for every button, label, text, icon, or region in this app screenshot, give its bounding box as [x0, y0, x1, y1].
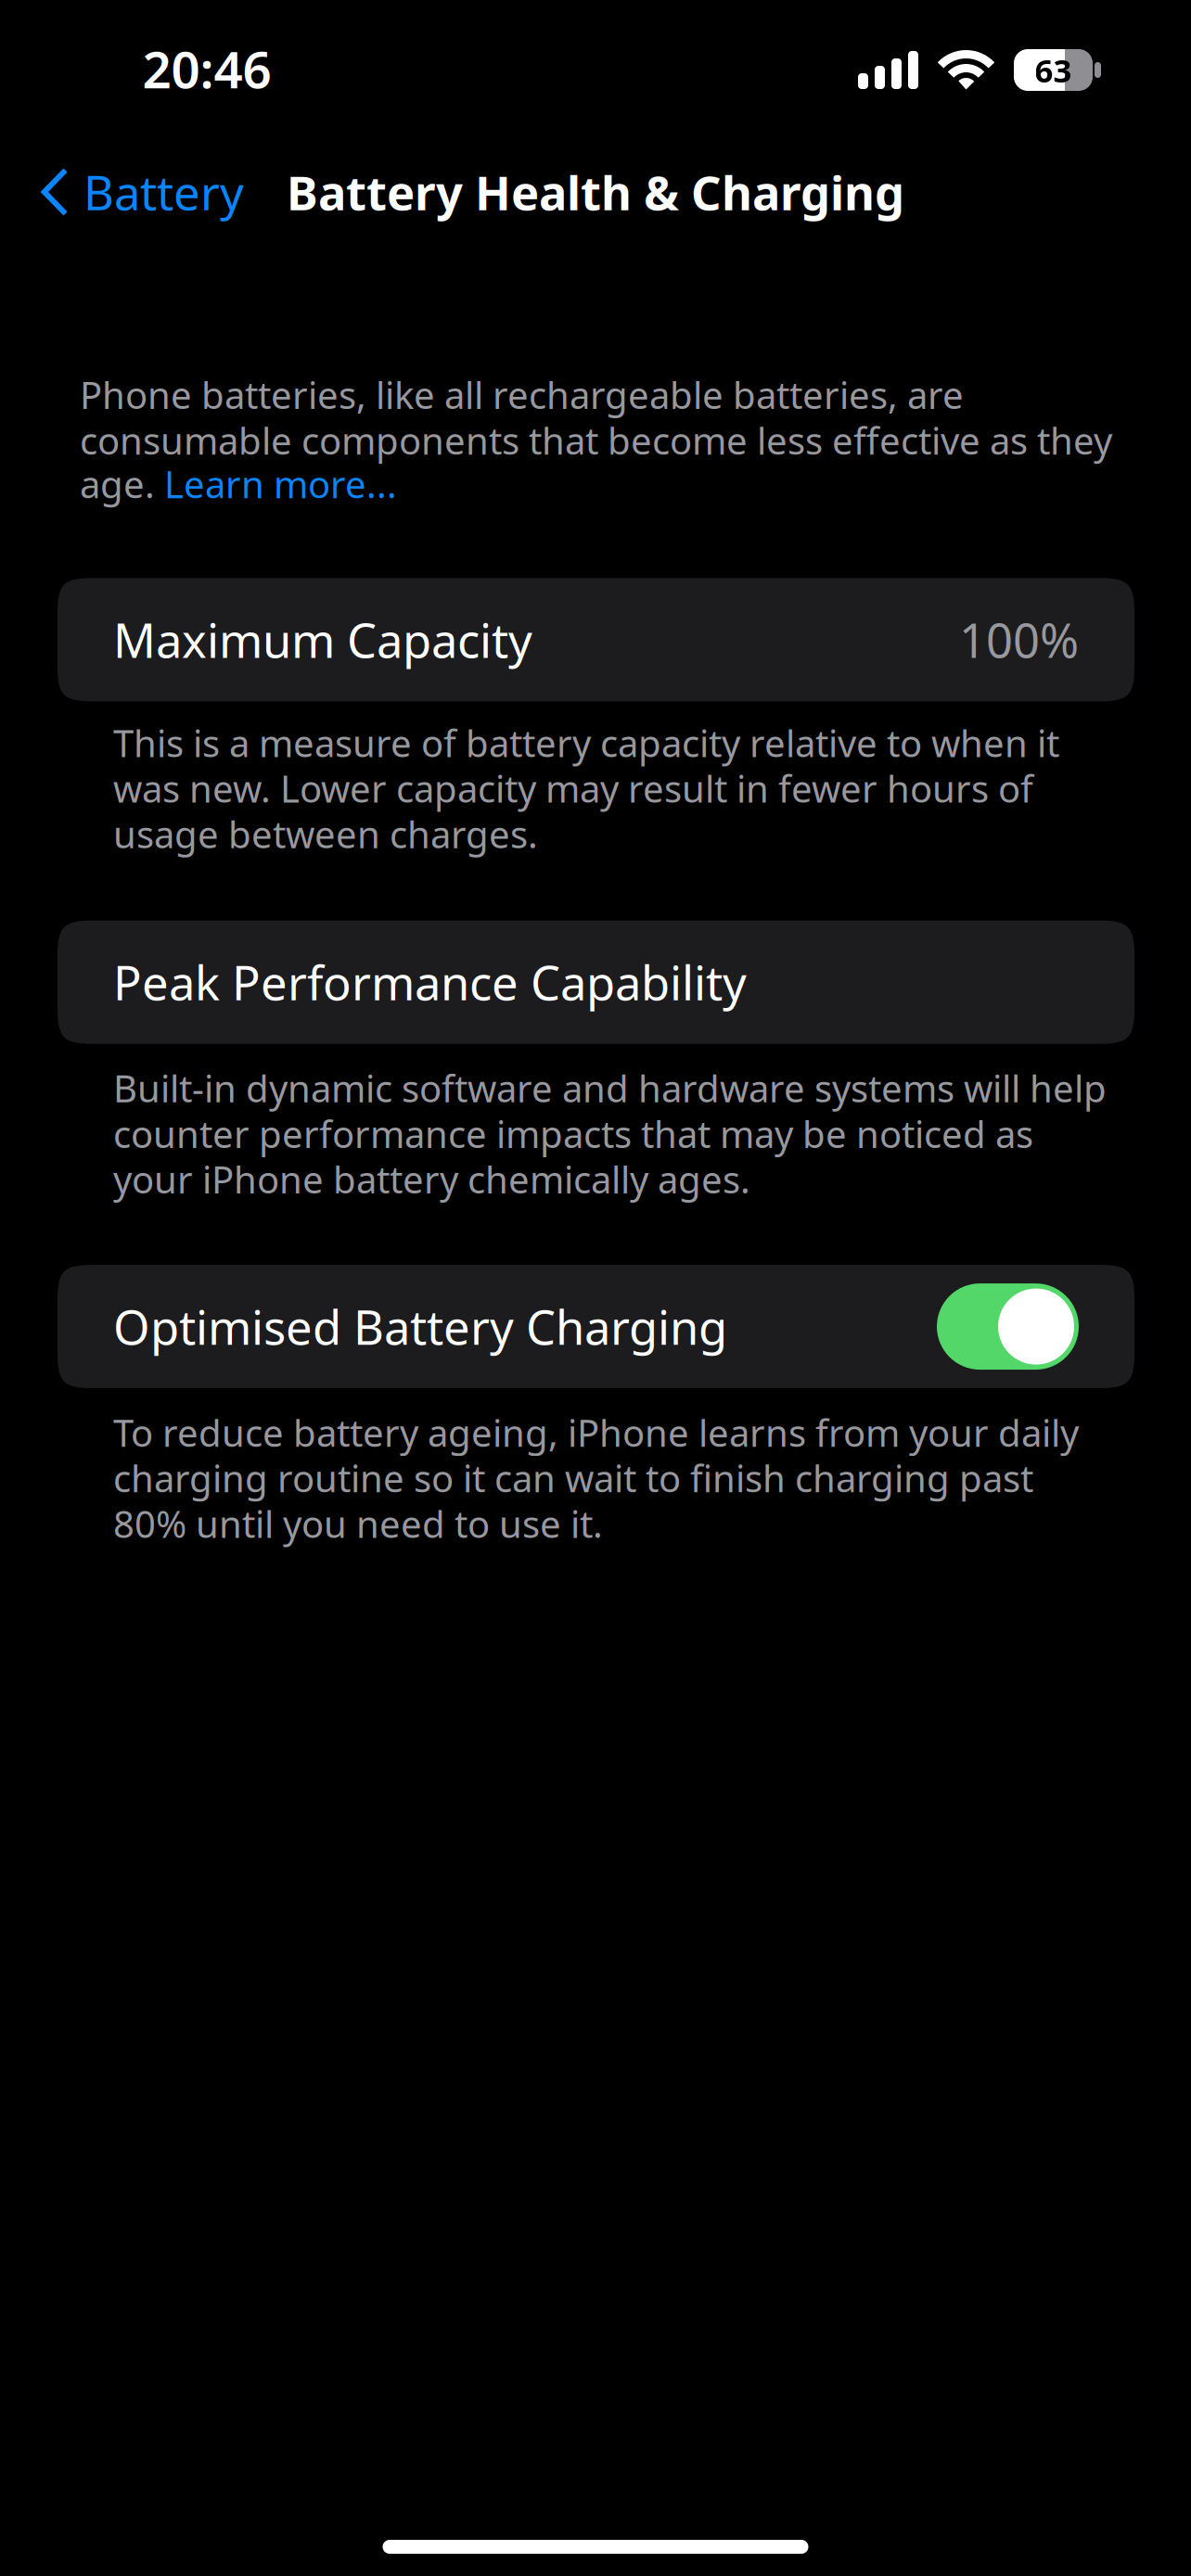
- staticText: This is a measure of battery capacity re…: [113, 718, 1059, 858]
- staticText: Battery: [83, 161, 244, 223]
- button[interactable]: Maximum Capacity: [0, 578, 1134, 701]
- staticText: age.: [80, 459, 164, 508]
- staticText: Peak Performance Capability: [113, 951, 747, 1013]
- button[interactable]: Optimised Battery Charging: [937, 1283, 1079, 1370]
- staticText: 20:46: [142, 35, 271, 102]
- button[interactable]: Learn more...: [164, 459, 397, 508]
- staticText: To reduce battery ageing, iPhone learns …: [113, 1408, 1079, 1548]
- staticText: 63: [1035, 49, 1072, 91]
- staticText: Maximum Capacity: [113, 608, 532, 671]
- staticText: Optimised Battery Charging: [113, 1295, 727, 1358]
- staticText: Built-in dynamic software and hardware s…: [113, 1063, 1107, 1204]
- button[interactable]: Battery: [0, 141, 263, 243]
- staticText: Battery Health & Charging: [287, 161, 904, 223]
- button[interactable]: Peak Performance Capability: [0, 921, 1134, 1044]
- button[interactable]: Optimised Battery Charging: [0, 1265, 1134, 1388]
- staticText: 100%: [959, 608, 1079, 671]
- staticText: Phone batteries, like all rechargeable b…: [80, 370, 1112, 465]
- staticText: Learn more...: [164, 459, 397, 508]
